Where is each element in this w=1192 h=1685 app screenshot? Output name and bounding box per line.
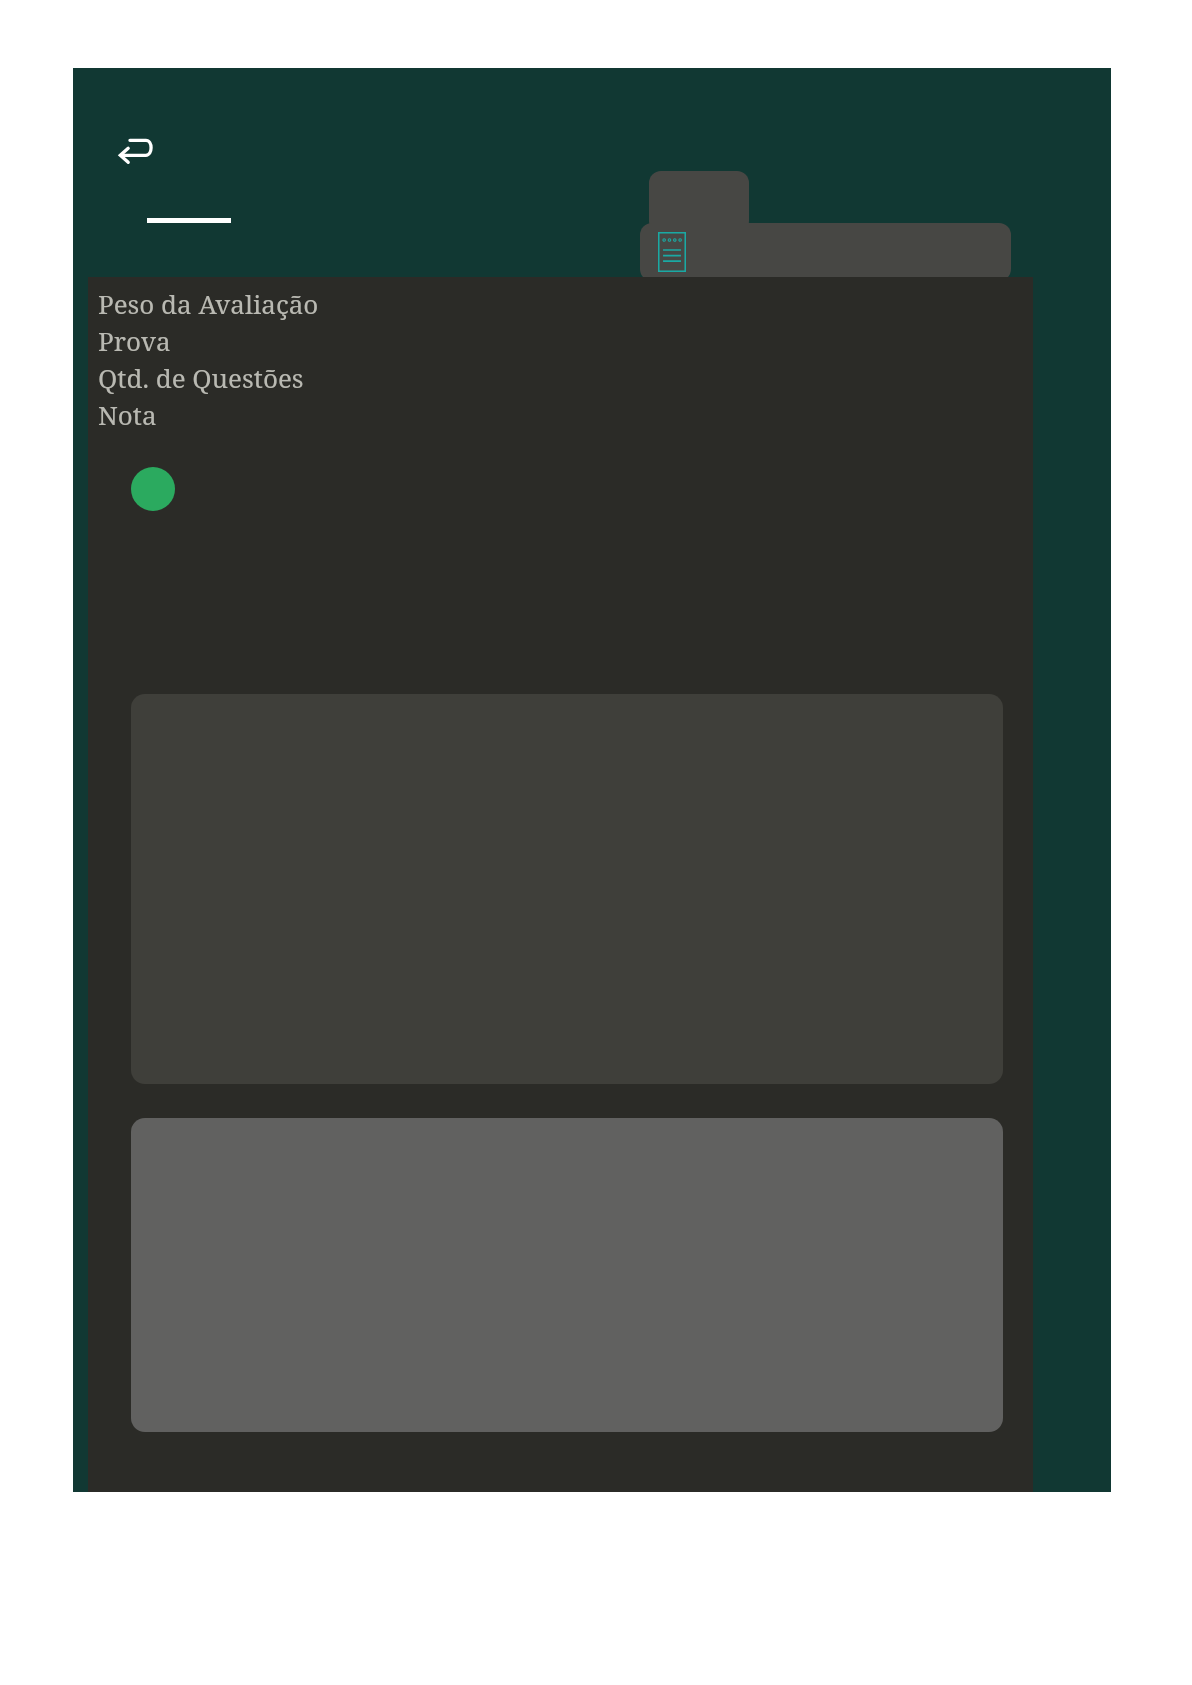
staticText: Prova xyxy=(98,323,171,358)
button[interactable]: Back xyxy=(105,118,169,182)
button[interactable] xyxy=(131,467,175,511)
other: Notepad xyxy=(658,232,686,272)
staticText: Nota xyxy=(98,397,157,432)
button[interactable]: Notepad xyxy=(640,223,1011,281)
staticText: Peso da Avaliação xyxy=(98,286,319,321)
staticText: Qtd. de Questões xyxy=(98,360,304,395)
button[interactable] xyxy=(649,171,749,233)
